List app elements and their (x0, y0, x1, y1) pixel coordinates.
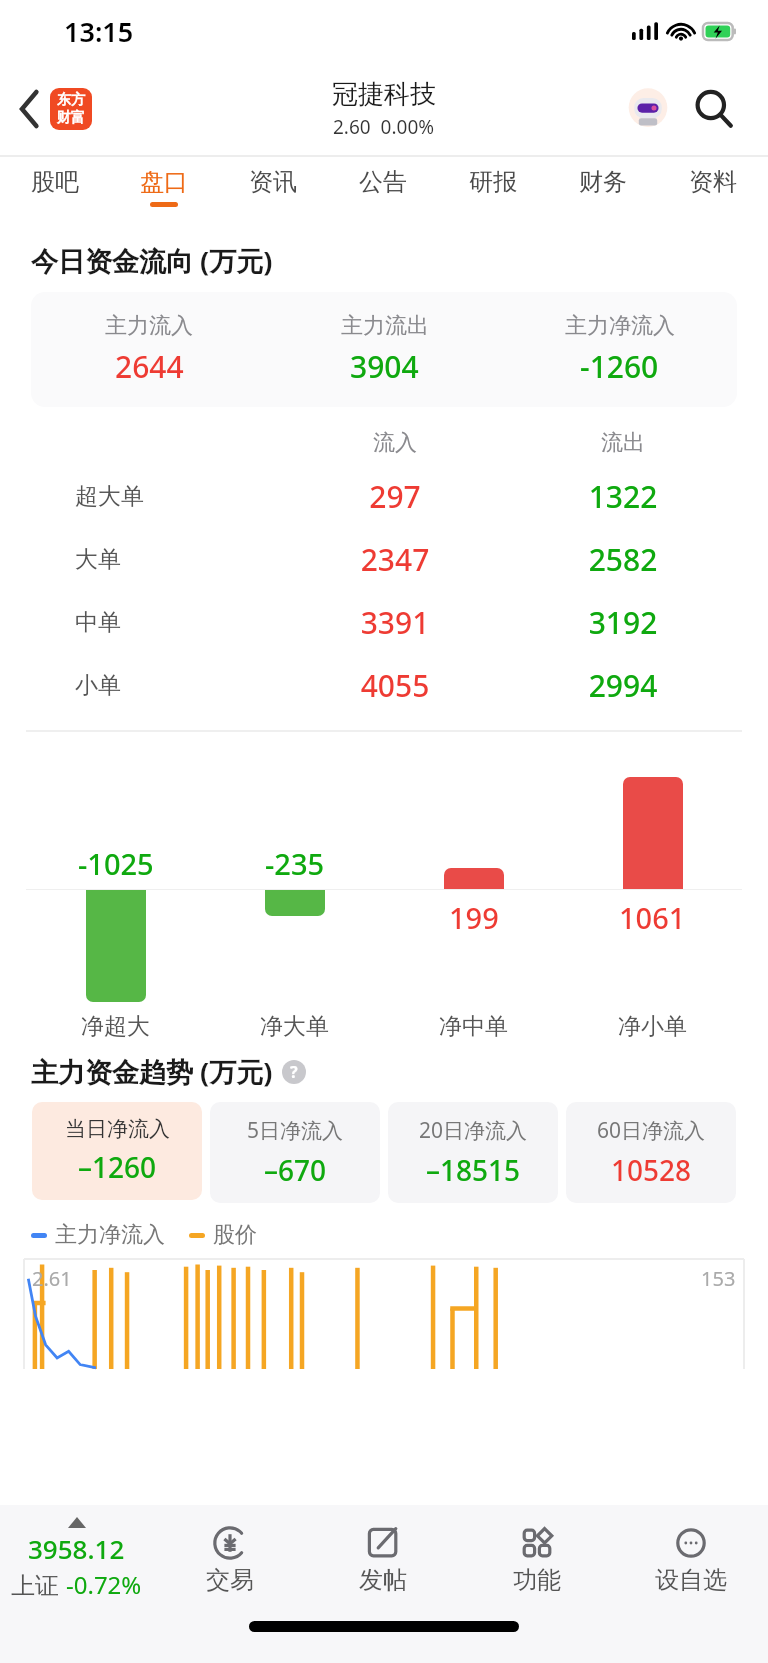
staticText: 净大单 (205, 1012, 384, 1041)
staticText: 199 (449, 898, 499, 937)
staticText: 股吧 (31, 167, 79, 197)
button[interactable]: 大单 (31, 528, 737, 591)
staticText: 60日净流入 (597, 1116, 706, 1145)
staticText: ? (290, 1061, 298, 1083)
button[interactable]: 发帖 (306, 1505, 460, 1613)
staticText: 净小单 (563, 1012, 742, 1041)
button[interactable]: 研报 (438, 156, 548, 218)
button[interactable]: 5日净流入 (210, 1102, 380, 1203)
button[interactable]: 搜索 (688, 83, 740, 135)
button[interactable]: 3958.12 (0, 1505, 153, 1613)
staticText: 东方 (57, 91, 85, 109)
staticText: 财富 (57, 109, 85, 127)
staticText: 当日净流入 (65, 1116, 170, 1142)
staticText: -1025 (78, 844, 154, 883)
button[interactable]: AI 助手 (622, 83, 674, 135)
staticText: 财务 (579, 167, 627, 197)
staticText: 资讯 (249, 167, 297, 197)
staticText: 冠捷科技 (332, 78, 436, 111)
staticText: 297 (281, 476, 509, 517)
staticText: 股价 (213, 1221, 257, 1249)
staticText: –670 (264, 1151, 327, 1189)
staticText: 中单 (75, 608, 281, 637)
button[interactable]: 交易 (153, 1505, 306, 1613)
staticText: 小单 (75, 671, 281, 700)
staticText: 3904 (350, 346, 419, 387)
staticText: 13:15 (64, 13, 134, 50)
staticText: 2.60 0.00% (333, 114, 435, 140)
staticText: 资料 (689, 167, 737, 197)
button[interactable]: 超大单 (31, 465, 737, 528)
staticText: 发帖 (359, 1565, 407, 1595)
button[interactable]: 公告 (328, 156, 438, 218)
staticText: 公告 (359, 167, 407, 197)
staticText: 3192 (509, 602, 737, 643)
staticText: 净中单 (384, 1012, 563, 1041)
button[interactable]: 主力流入 (31, 292, 737, 407)
staticText: 研报 (469, 167, 517, 197)
button[interactable]: 帮助 (282, 1060, 306, 1084)
staticText: 流入 (281, 429, 509, 457)
staticText: 主力净流入 (55, 1221, 165, 1249)
staticText: 4055 (281, 665, 509, 706)
staticText: 2644 (115, 346, 184, 387)
staticText: 上证 (11, 1568, 66, 1601)
staticText: 超大单 (75, 482, 281, 511)
staticText: 20日净流入 (419, 1116, 528, 1145)
staticText: 5日净流入 (247, 1116, 344, 1145)
staticText: 3958.12 (28, 1531, 125, 1566)
staticText: 主力净流入 (565, 312, 675, 340)
button[interactable]: 20日净流入 (388, 1102, 558, 1203)
button[interactable]: 财务 (548, 156, 658, 218)
button[interactable]: 功能 (460, 1505, 614, 1613)
staticText: 2347 (281, 539, 509, 580)
staticText: 153 (701, 1265, 736, 1292)
staticText: -1260 (580, 346, 659, 387)
button[interactable]: 返回 (12, 82, 100, 136)
button[interactable]: 小单 (31, 654, 737, 717)
staticText: 大单 (75, 545, 281, 574)
staticText: 2994 (509, 665, 737, 706)
staticText: 10528 (611, 1151, 692, 1189)
button[interactable]: 中单 (31, 591, 737, 654)
staticText: 1061 (619, 898, 686, 937)
staticText: 2.61 (32, 1265, 72, 1292)
staticText: 净超大 (26, 1012, 205, 1041)
button[interactable]: 资料 (658, 156, 768, 218)
staticText: –1260 (78, 1148, 157, 1186)
staticText: 交易 (206, 1565, 254, 1595)
staticText: 设自选 (655, 1565, 727, 1595)
staticText: 主力流入 (105, 312, 193, 340)
staticText: 1322 (509, 476, 737, 517)
staticText: 主力流出 (341, 312, 429, 340)
staticText: –18515 (426, 1151, 521, 1189)
staticText: 主力资金趋势 (万元) (31, 1053, 273, 1090)
staticText: 3391 (281, 602, 509, 643)
button[interactable]: 设自选 (614, 1505, 768, 1613)
button[interactable]: 60日净流入 (566, 1102, 736, 1203)
button[interactable]: 当日净流入 (32, 1102, 202, 1200)
staticText: 盘口 (140, 167, 188, 197)
staticText: 流出 (509, 429, 737, 457)
staticText: 功能 (513, 1565, 561, 1595)
staticText: -235 (265, 844, 325, 883)
button[interactable]: 盘口 (109, 156, 218, 218)
button[interactable]: 资讯 (218, 156, 328, 218)
staticText: -0.72% (66, 1568, 142, 1601)
staticText: 今日资金流向 (万元) (31, 242, 273, 279)
staticText: 2582 (509, 539, 737, 580)
button[interactable]: 股吧 (0, 156, 109, 218)
